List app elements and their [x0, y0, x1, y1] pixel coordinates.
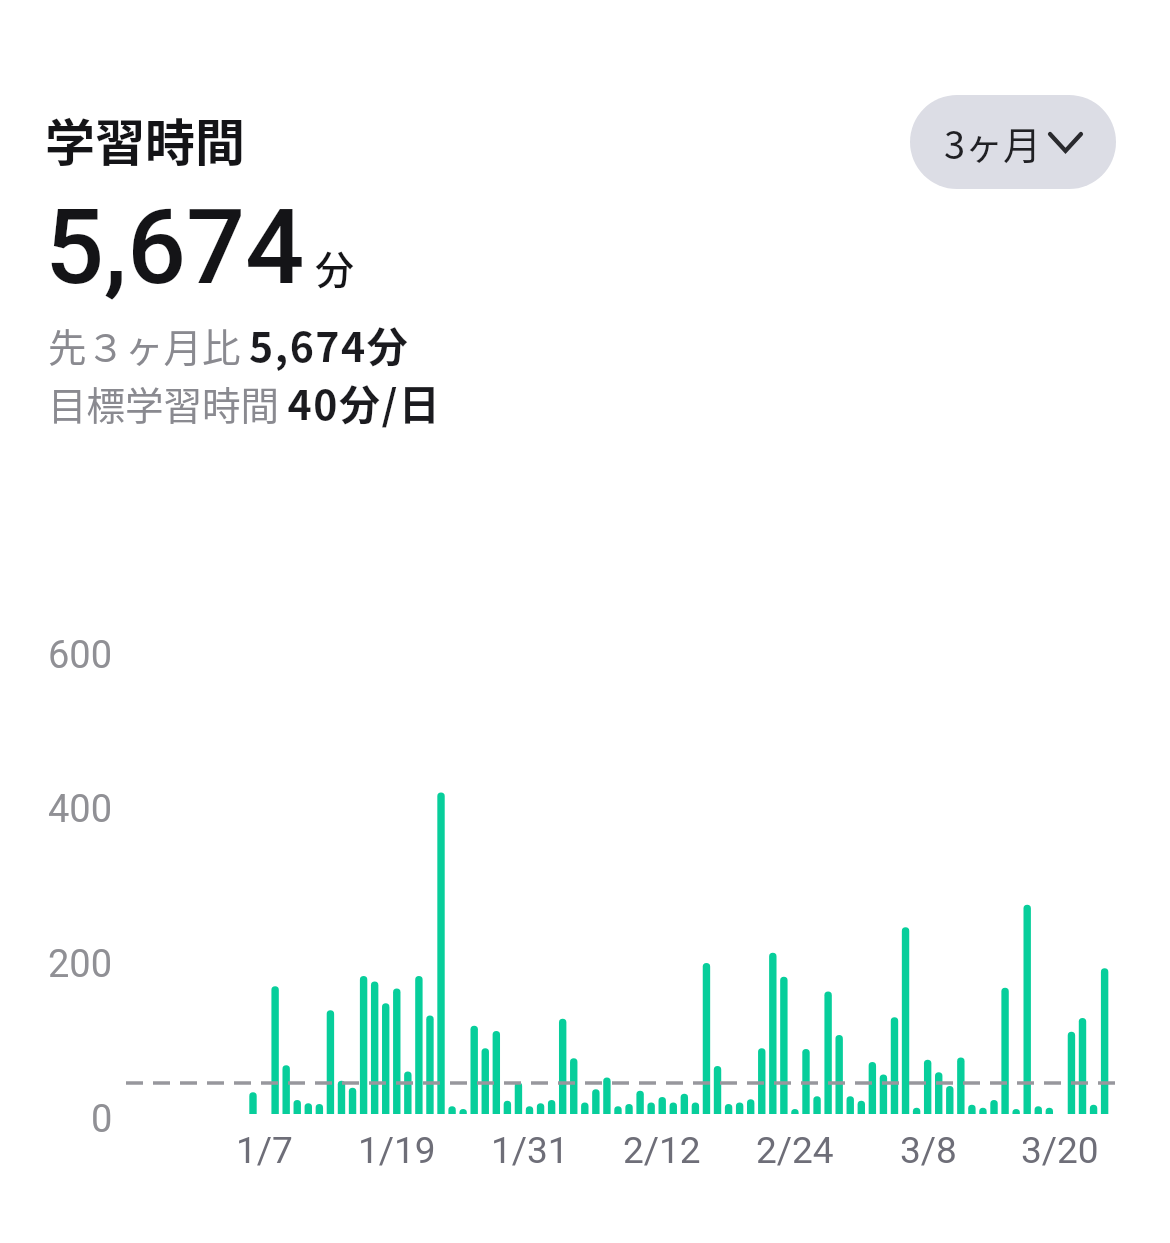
- staticText: 0: [91, 1097, 113, 1142]
- staticText: 1/7: [236, 1129, 293, 1172]
- staticText: 1/19: [358, 1129, 436, 1172]
- staticText: 600: [48, 633, 113, 678]
- staticText: 200: [48, 942, 113, 987]
- staticText: 分: [315, 239, 355, 295]
- button[interactable]: 3ヶ月: [910, 95, 1116, 189]
- staticText: 目標学習時間 40分/日: [48, 372, 442, 431]
- staticText: 2/24: [756, 1129, 834, 1172]
- staticText: 5,674: [45, 187, 305, 309]
- staticText: 先３ヶ月比 5,674分: [48, 314, 410, 373]
- staticText: 3ヶ月: [944, 115, 1042, 170]
- staticText: 2/12: [623, 1129, 701, 1172]
- staticText: 3/8: [900, 1129, 957, 1172]
- staticText: 400: [48, 787, 113, 832]
- staticText: 学習時間: [45, 103, 245, 175]
- staticText: 1/31: [491, 1129, 569, 1172]
- staticText: 3/20: [1021, 1129, 1099, 1172]
